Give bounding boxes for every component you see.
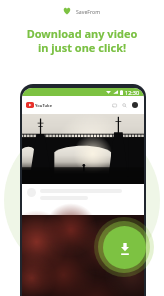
staticText: YouTube	[35, 103, 53, 108]
button[interactable]: Account	[132, 102, 138, 108]
button[interactable]: Download	[103, 226, 146, 269]
staticText: SaveFrom	[76, 8, 101, 15]
staticText: 12:30	[125, 89, 140, 96]
button[interactable]: Cast	[112, 103, 117, 108]
button[interactable]: Search	[122, 103, 127, 108]
staticText: Download any video in just one click!	[0, 26, 164, 55]
